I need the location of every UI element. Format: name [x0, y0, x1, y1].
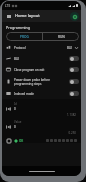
button[interactable]: Connection status [70, 12, 79, 21]
staticText: 0.250 [6, 131, 76, 135]
staticText: Home layout [15, 13, 40, 19]
button[interactable]: Key [46, 139, 49, 142]
button[interactable]: BLE [66, 46, 79, 50]
button[interactable]: BLE [2, 53, 81, 64]
staticText: Programming [6, 25, 31, 30]
staticText: Indexed mode [14, 92, 69, 96]
button[interactable]: Accept [13, 138, 18, 143]
staticText: Power down probe before programming step… [14, 78, 69, 86]
staticText: OK [19, 139, 24, 143]
staticText: LTE [5, 4, 11, 8]
button[interactable]: Indexed mode [2, 88, 81, 99]
button[interactable]: Toggle [69, 79, 79, 84]
staticText: 0 [14, 125, 16, 129]
staticText: BLE [67, 46, 73, 50]
staticText: Close program on exit [14, 68, 69, 72]
button[interactable]: Key [70, 139, 73, 142]
staticText: Id [14, 102, 17, 106]
staticText: 0 [14, 107, 16, 111]
button[interactable]: PROG [6, 32, 42, 41]
button[interactable]: Key [50, 139, 53, 142]
button[interactable]: Power down probe before programming step… [2, 75, 81, 88]
button[interactable]: Close program on exit [2, 64, 81, 75]
button[interactable]: Toggle [69, 91, 79, 96]
staticText: Protocol [14, 46, 66, 50]
button[interactable]: Toggle [69, 56, 79, 61]
button[interactable]: Menu [4, 12, 13, 21]
button[interactable]: Protocol [2, 42, 81, 53]
button[interactable]: Key [74, 139, 77, 142]
staticText: Value [14, 120, 22, 124]
staticText: BLE [14, 57, 69, 61]
staticText: 1.1382 [6, 113, 76, 117]
button[interactable]: Keyboard [6, 138, 11, 143]
staticText: PROG [20, 35, 29, 39]
button[interactable]: Key [58, 139, 61, 142]
button[interactable]: Key [62, 139, 65, 142]
button[interactable]: Key [54, 139, 57, 142]
button[interactable]: Toggle [69, 67, 79, 72]
button[interactable]: Key [66, 139, 69, 142]
button[interactable]: RUN [43, 32, 79, 41]
staticText: RUN [58, 35, 65, 39]
